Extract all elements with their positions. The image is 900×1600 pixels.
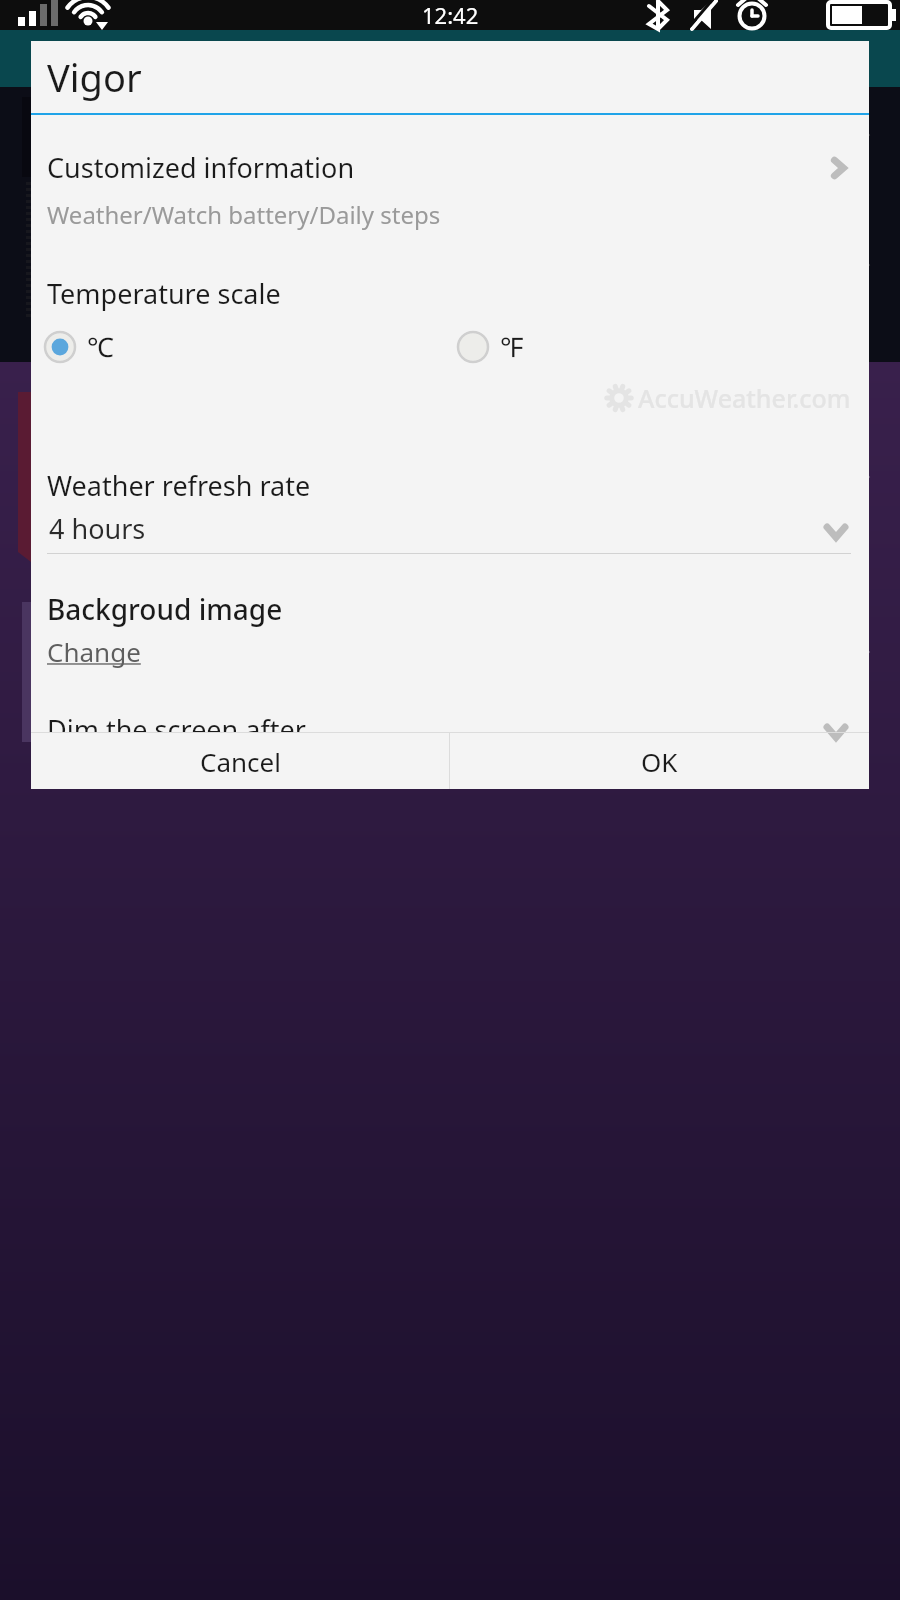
staticText: Vigor: [47, 51, 142, 103]
button[interactable]: Customized information: [31, 141, 869, 190]
button[interactable]: Change: [47, 634, 141, 669]
staticText: AccuWeather.com: [638, 381, 851, 415]
button[interactable]: ℉: [456, 322, 869, 371]
button[interactable]: 4 hours: [47, 510, 851, 554]
staticText: 4 hours: [49, 510, 821, 547]
button[interactable]: Cancel: [31, 733, 449, 789]
staticText: ℃: [87, 328, 114, 365]
button[interactable]: ℃: [43, 322, 456, 371]
staticText: 12:42: [422, 0, 479, 30]
button[interactable]: OK: [450, 733, 869, 789]
staticText: Weather/Watch battery/Daily steps: [47, 198, 441, 231]
staticText: Customized information: [47, 149, 827, 186]
staticText: Temperature scale: [47, 275, 281, 312]
staticText: Cancel: [200, 744, 281, 779]
staticText: Change: [47, 634, 141, 669]
staticText: Weather refresh rate: [47, 467, 311, 504]
staticText: ℉: [500, 328, 524, 365]
staticText: OK: [641, 744, 678, 779]
staticText: Backgroud image: [47, 590, 283, 628]
staticText: Dim the screen after: [47, 711, 306, 732]
